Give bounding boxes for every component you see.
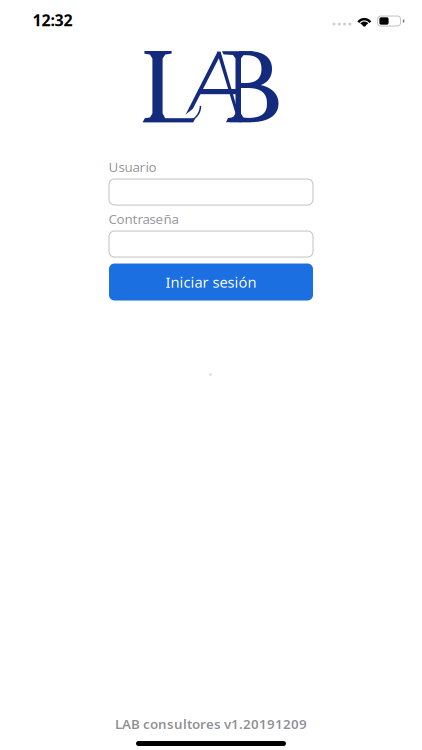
staticText: Usuario [108, 158, 156, 176]
staticText: LAB consultores v1.20191209 [115, 715, 307, 733]
staticText: 12:32 [32, 9, 72, 31]
staticText: Contraseña [108, 210, 178, 228]
button[interactable]: Iniciar sesión [109, 263, 313, 300]
staticText: Iniciar sesión [165, 272, 256, 292]
